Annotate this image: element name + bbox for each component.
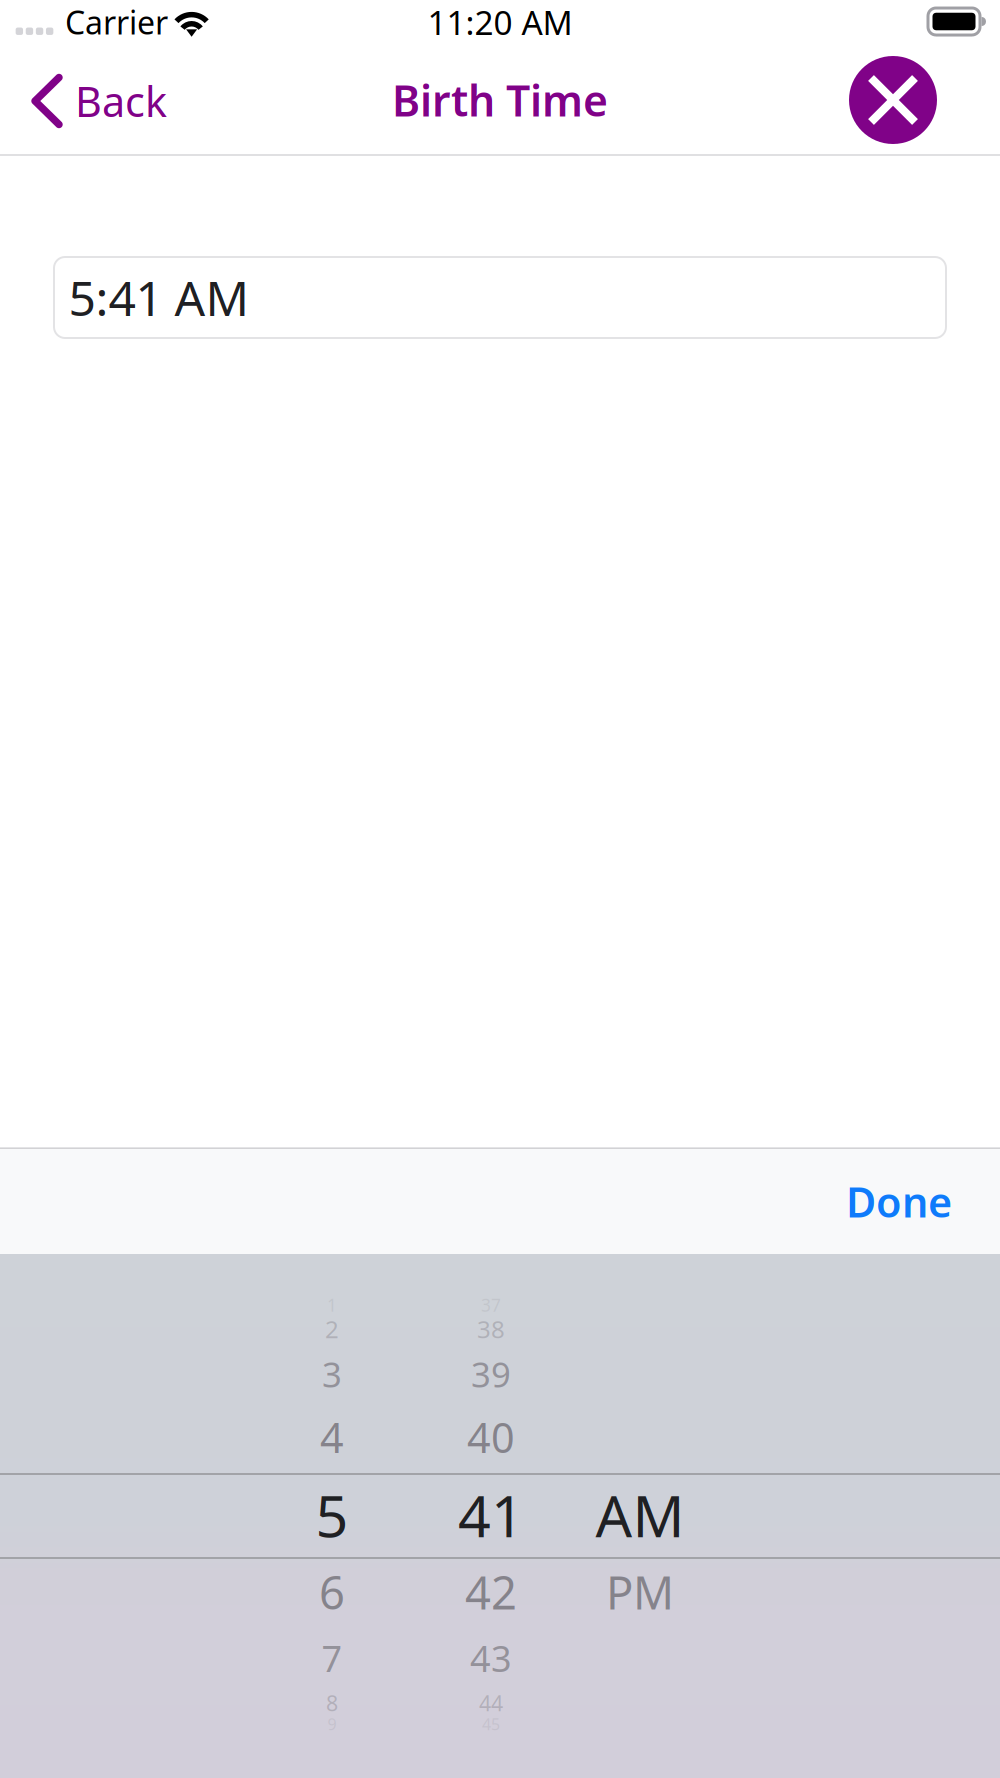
button[interactable]: 5:41 AM: [0, 156, 1000, 338]
staticText: Done: [846, 1174, 952, 1229]
staticText: 3: [322, 1351, 342, 1397]
staticText: 41: [458, 1477, 524, 1553]
staticText: 42: [465, 1562, 517, 1622]
staticText: 44: [479, 1689, 503, 1717]
staticText: 45: [482, 1713, 500, 1735]
staticText: 8: [326, 1689, 338, 1717]
staticText: 39: [471, 1351, 511, 1397]
staticText: 5: [315, 1477, 348, 1553]
staticText: 43: [470, 1634, 512, 1682]
staticText: 9: [327, 1713, 336, 1735]
staticText: 40: [467, 1410, 515, 1464]
staticText: 11:20 AM: [427, 0, 572, 44]
button[interactable]: Done: [824, 1156, 974, 1247]
staticText: 6: [319, 1562, 345, 1622]
button[interactable]: Back: [0, 50, 185, 154]
staticText: 7: [321, 1634, 342, 1682]
staticText: AM: [595, 1477, 684, 1553]
button[interactable]: Close: [835, 50, 1000, 154]
staticText: 2: [325, 1313, 339, 1345]
staticText: 1: [327, 1293, 337, 1316]
staticText: Carrier: [65, 1, 168, 43]
staticText: Birth Time: [392, 72, 608, 128]
staticText: PM: [606, 1562, 674, 1622]
staticText: 4: [320, 1410, 344, 1464]
staticText: 38: [477, 1313, 505, 1345]
staticText: 37: [481, 1293, 501, 1316]
staticText: 5:41 AM: [68, 266, 249, 329]
staticText: Back: [75, 74, 167, 128]
